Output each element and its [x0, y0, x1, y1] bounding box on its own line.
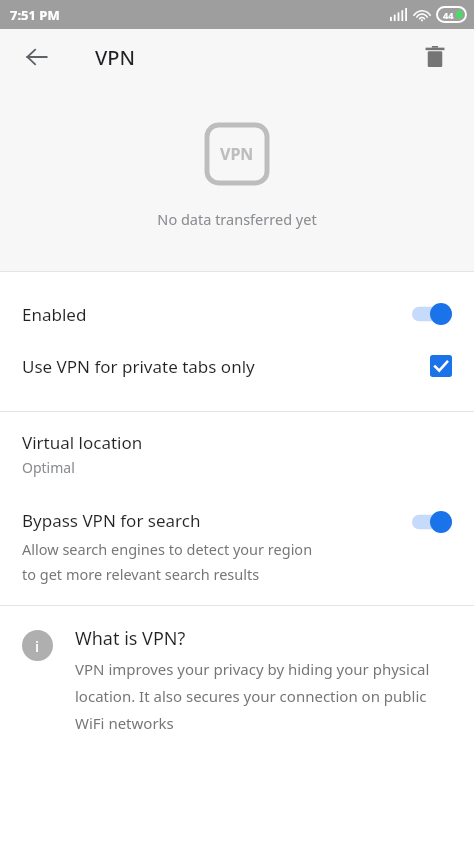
staticText: Allow search engines to detect your regi…: [22, 539, 322, 585]
staticText: Use VPN for private tabs only: [22, 355, 430, 378]
staticText: Enabled: [22, 303, 412, 326]
button[interactable]: Virtual location: [0, 431, 474, 477]
button[interactable]: Bypass VPN for search: [0, 509, 474, 585]
button[interactable]: Use VPN for private tabs only: [0, 340, 474, 392]
staticText: Optimal: [22, 458, 75, 477]
staticText: 7:51 PM: [10, 6, 60, 24]
staticText: Virtual location: [22, 431, 143, 454]
button[interactable]: Delete: [411, 33, 459, 81]
staticText: VPN: [220, 143, 254, 165]
staticText: What is VPN?: [75, 626, 186, 651]
button[interactable]: Enabled: [0, 288, 474, 340]
staticText: No data transferred yet: [0, 209, 474, 229]
button[interactable]: i: [0, 626, 474, 734]
staticText: i: [35, 636, 40, 656]
staticText: VPN improves your privacy by hiding your…: [75, 659, 456, 734]
button[interactable]: Back: [13, 33, 61, 81]
staticText: VPN: [95, 44, 136, 71]
staticText: 44: [443, 9, 454, 21]
staticText: Bypass VPN for search: [22, 509, 201, 532]
